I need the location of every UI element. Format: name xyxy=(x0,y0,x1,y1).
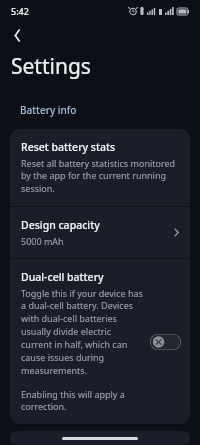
button[interactable]: Design capacity xyxy=(10,207,190,258)
staticText: Toggle this if your device has a dual-ce… xyxy=(21,287,144,377)
staticText: Design capacity xyxy=(21,218,100,232)
staticText: 5:42 xyxy=(11,5,29,17)
button[interactable]: Reset battery stats xyxy=(10,129,190,206)
staticText: Settings xyxy=(11,52,91,81)
staticText: Enabling this will apply a correction. xyxy=(21,388,144,413)
button[interactable]: Toggle xyxy=(150,334,181,350)
staticText: Reset all battery statistics monitored b… xyxy=(21,157,179,195)
staticText: Dual-cell battery xyxy=(21,270,104,284)
button[interactable]: Dual-cell battery xyxy=(10,259,190,424)
staticText: Battery info xyxy=(20,103,77,117)
button[interactable]: Back xyxy=(4,22,30,48)
button[interactable]: Battery cells connected in series xyxy=(10,431,190,445)
staticText: Reset battery stats xyxy=(21,140,116,154)
staticText: 5000 mAh xyxy=(21,235,64,247)
